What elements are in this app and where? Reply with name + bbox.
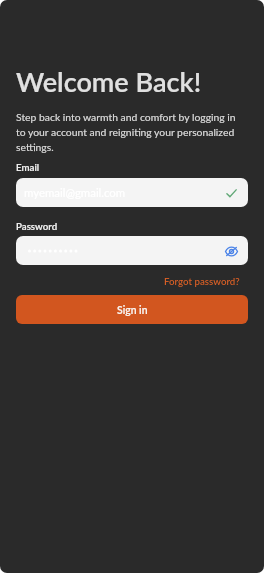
staticText: Password (16, 221, 58, 232)
staticText: Forgot password? (164, 275, 240, 287)
staticText: Step back into warmth and comfort by log… (16, 109, 244, 154)
button[interactable]: Forgot password? (164, 275, 240, 287)
other: Email verified (226, 187, 239, 200)
button[interactable]: Sign in (16, 295, 248, 324)
staticText: Sign in (117, 303, 148, 316)
staticText: myemail@gmail.com (24, 186, 126, 199)
button[interactable]: myemail@gmail.com (16, 178, 248, 207)
staticText: Email (16, 162, 40, 173)
button[interactable]: Show password (16, 236, 248, 265)
staticText: Welcome Back! (16, 66, 202, 98)
button[interactable]: Show password (225, 245, 238, 258)
